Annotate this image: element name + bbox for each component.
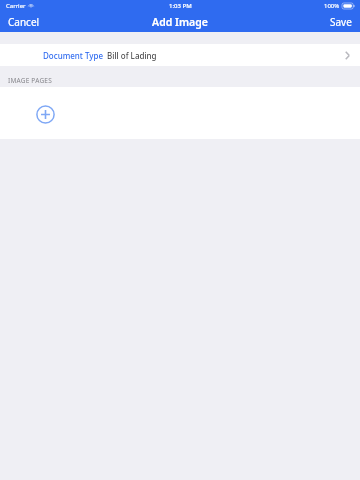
staticText: Document Type xyxy=(43,50,104,61)
button[interactable]: Save xyxy=(322,12,360,32)
staticText: Bill of Lading xyxy=(107,50,157,61)
staticText: Carrier xyxy=(6,2,26,10)
button[interactable]: Document Type xyxy=(0,44,360,66)
button[interactable]: Cancel xyxy=(0,12,48,32)
staticText: Cancel xyxy=(8,15,40,29)
staticText: 1:03 PM xyxy=(169,2,192,10)
staticText: Add Image xyxy=(152,15,208,29)
staticText: 100% xyxy=(324,2,340,10)
button[interactable]: Add image page xyxy=(33,102,57,126)
staticText: IMAGE PAGES xyxy=(8,76,52,85)
staticText: Save xyxy=(330,15,352,29)
